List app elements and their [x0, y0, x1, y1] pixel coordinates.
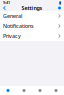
- button[interactable]: Add: [58, 6, 61, 9]
- staticText: Privacy: [3, 32, 21, 40]
- staticText: 9:41: [3, 0, 10, 5]
- button[interactable]: Tab: [0, 89, 16, 92]
- button[interactable]: Tab: [16, 89, 32, 92]
- staticText: General: [3, 12, 22, 20]
- button[interactable]: Back: [3, 6, 6, 10]
- staticText: Notifications: [3, 22, 34, 30]
- staticText: Settings: [21, 4, 42, 12]
- button[interactable]: Tab: [32, 89, 48, 92]
- button[interactable]: Tab: [48, 89, 64, 92]
- staticText: ▮: [59, 0, 61, 5]
